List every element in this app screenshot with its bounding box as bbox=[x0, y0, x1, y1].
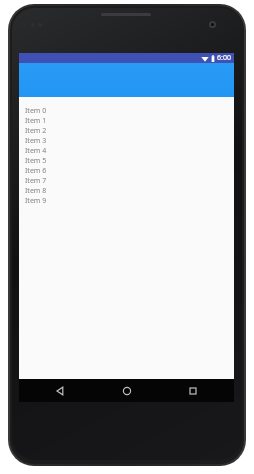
staticText: Enter Message bbox=[27, 380, 83, 391]
button[interactable]: Back bbox=[35, 379, 85, 402]
button[interactable]: Item 2 bbox=[25, 126, 234, 136]
button[interactable]: Item 7 bbox=[25, 176, 234, 186]
button[interactable]: SEND bbox=[179, 379, 227, 396]
staticText: Item 8 bbox=[25, 186, 47, 196]
button[interactable]: Item 3 bbox=[25, 136, 234, 146]
button[interactable]: Home bbox=[102, 379, 152, 402]
button[interactable]: Enter Message bbox=[26, 380, 171, 394]
button[interactable]: Item 9 bbox=[25, 196, 234, 206]
staticText: Item 9 bbox=[25, 196, 47, 206]
staticText: Item 6 bbox=[25, 166, 47, 176]
staticText: Item 2 bbox=[25, 126, 47, 136]
staticText: Item 3 bbox=[25, 136, 47, 146]
button[interactable]: Item 6 bbox=[25, 166, 234, 176]
staticText: SEND bbox=[194, 383, 213, 393]
button[interactable]: Item 4 bbox=[25, 146, 234, 156]
button[interactable]: Item 0 bbox=[25, 106, 234, 116]
button[interactable]: Item 1 bbox=[25, 116, 234, 126]
staticText: Item 0 bbox=[25, 106, 47, 116]
staticText: 6:00 bbox=[217, 53, 231, 63]
staticText: Item 4 bbox=[25, 146, 47, 156]
staticText: Item 5 bbox=[25, 156, 47, 166]
button[interactable]: Item 5 bbox=[25, 156, 234, 166]
button[interactable]: Item 8 bbox=[25, 186, 234, 196]
staticText: Item 7 bbox=[25, 176, 47, 186]
staticText: Item 1 bbox=[25, 116, 47, 126]
button[interactable]: Recent apps bbox=[168, 379, 218, 402]
